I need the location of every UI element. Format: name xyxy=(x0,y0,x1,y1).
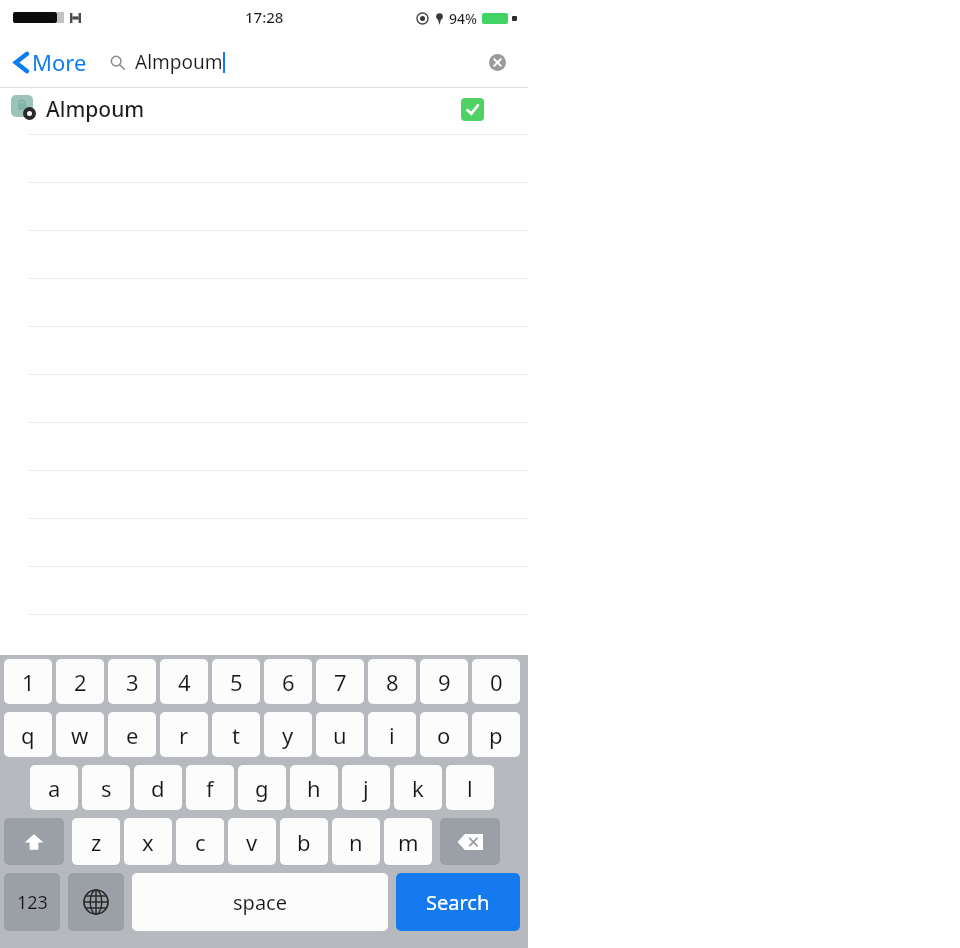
staticText: s xyxy=(101,773,112,803)
staticText: 6 xyxy=(282,667,295,697)
button[interactable]: c xyxy=(176,818,224,865)
button[interactable]: b xyxy=(280,818,328,865)
button[interactable]: Change keyboard language xyxy=(68,873,124,931)
staticText: Almpoum xyxy=(46,95,145,124)
staticText: 7 xyxy=(334,667,347,697)
button[interactable]: u xyxy=(316,712,364,757)
button[interactable]: z xyxy=(72,818,120,865)
button[interactable]: m xyxy=(384,818,432,865)
staticText: o xyxy=(437,720,451,750)
button[interactable]: e xyxy=(108,712,156,757)
staticText: g xyxy=(255,773,269,803)
button[interactable]: More xyxy=(0,41,97,83)
staticText: p xyxy=(489,720,503,750)
staticText: z xyxy=(91,827,102,857)
staticText: c xyxy=(195,827,206,857)
button[interactable]: l xyxy=(446,765,494,810)
staticText: y xyxy=(282,720,294,750)
staticText: t xyxy=(232,720,240,750)
staticText: h xyxy=(307,773,321,803)
staticText: m xyxy=(398,827,419,857)
staticText: 9 xyxy=(438,667,451,697)
staticText: 0 xyxy=(490,667,503,697)
staticText: a xyxy=(48,773,61,803)
button[interactable]: h xyxy=(290,765,338,810)
button[interactable]: 1 xyxy=(4,659,52,704)
button[interactable]: Clear text xyxy=(481,46,513,78)
staticText: Almpoum xyxy=(135,49,223,75)
button[interactable]: r xyxy=(160,712,208,757)
staticText: r xyxy=(179,720,189,750)
button[interactable]: 8 xyxy=(368,659,416,704)
button[interactable]: p xyxy=(472,712,520,757)
button[interactable]: 4 xyxy=(160,659,208,704)
staticText: f xyxy=(206,773,214,803)
staticText: l xyxy=(467,773,473,803)
staticText: i xyxy=(389,720,395,750)
staticText: b xyxy=(297,827,311,857)
button[interactable]: 123 xyxy=(4,873,60,931)
button[interactable]: t xyxy=(212,712,260,757)
staticText: q xyxy=(21,720,35,750)
button[interactable]: s xyxy=(82,765,130,810)
staticText: More xyxy=(32,47,87,77)
button[interactable]: 0 xyxy=(472,659,520,704)
button[interactable]: Shift xyxy=(4,818,64,865)
staticText: k xyxy=(412,773,424,803)
staticText: v xyxy=(246,827,258,857)
staticText: 5 xyxy=(230,667,243,697)
button[interactable]: 2 xyxy=(56,659,104,704)
button[interactable]: n xyxy=(332,818,380,865)
button[interactable]: i xyxy=(368,712,416,757)
button[interactable]: 3 xyxy=(108,659,156,704)
button[interactable]: x xyxy=(124,818,172,865)
button[interactable]: k xyxy=(394,765,442,810)
staticText: 94% xyxy=(449,9,477,28)
button[interactable]: a xyxy=(30,765,78,810)
button[interactable]: Search xyxy=(396,873,520,931)
button[interactable]: Backspace xyxy=(440,818,500,865)
staticText: e xyxy=(126,720,139,750)
button[interactable]: q xyxy=(4,712,52,757)
staticText: x xyxy=(142,827,154,857)
button[interactable]: Almpoum xyxy=(0,88,528,132)
staticText: 4 xyxy=(178,667,191,697)
button[interactable]: w xyxy=(56,712,104,757)
staticText: 17:28 xyxy=(245,7,284,27)
button[interactable]: y xyxy=(264,712,312,757)
staticText: space xyxy=(233,889,287,916)
button[interactable]: 9 xyxy=(420,659,468,704)
staticText: 8 xyxy=(386,667,399,697)
button[interactable]: 6 xyxy=(264,659,312,704)
staticText: 3 xyxy=(126,667,139,697)
button[interactable]: j xyxy=(342,765,390,810)
staticText: n xyxy=(349,827,363,857)
staticText: d xyxy=(151,773,165,803)
staticText: Search xyxy=(426,889,490,916)
staticText: 2 xyxy=(74,667,87,697)
button[interactable]: f xyxy=(186,765,234,810)
button[interactable]: o xyxy=(420,712,468,757)
button[interactable]: Almpoum xyxy=(101,46,525,78)
button[interactable]: Selected xyxy=(461,98,484,121)
staticText: w xyxy=(71,720,89,750)
button[interactable]: v xyxy=(228,818,276,865)
staticText: 123 xyxy=(17,890,48,915)
button[interactable]: 5 xyxy=(212,659,260,704)
button[interactable]: d xyxy=(134,765,182,810)
staticText: u xyxy=(333,720,347,750)
button[interactable]: g xyxy=(238,765,286,810)
staticText: j xyxy=(363,773,369,803)
button[interactable]: space xyxy=(132,873,388,931)
staticText: 1 xyxy=(22,667,35,697)
button[interactable]: 7 xyxy=(316,659,364,704)
